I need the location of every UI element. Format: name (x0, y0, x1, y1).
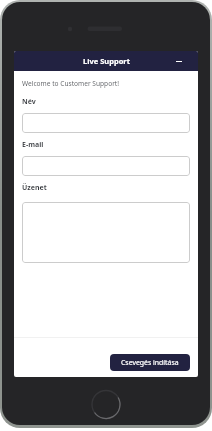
staticText: Live Support (83, 56, 130, 66)
button[interactable] (175, 56, 183, 66)
staticText: E-mail (22, 140, 44, 150)
button[interactable]: Csevegés indítása (110, 354, 190, 371)
staticText: Welcome to Customer Support! (22, 79, 120, 88)
button[interactable] (22, 202, 190, 263)
button[interactable] (22, 156, 190, 176)
button[interactable] (22, 113, 190, 133)
staticText: Név (22, 97, 36, 107)
staticText: Csevegés indítása (121, 358, 179, 367)
staticText: Üzenet (22, 183, 47, 193)
